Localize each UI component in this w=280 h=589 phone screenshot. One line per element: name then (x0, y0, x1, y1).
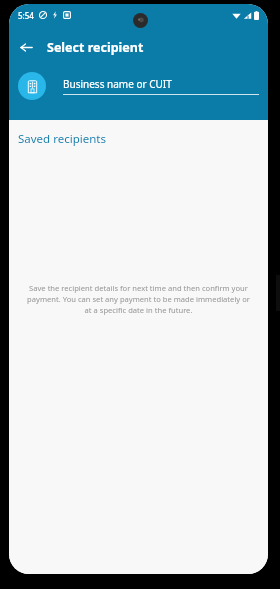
staticText: Save the recipient details for next time… (27, 283, 250, 315)
staticText: Select recipient (47, 39, 144, 56)
button[interactable]: Business name or CUIT (63, 77, 259, 95)
staticText: Saved recipients (18, 131, 106, 147)
button[interactable]: Back (15, 36, 37, 58)
staticText: Business name or CUIT (63, 77, 172, 91)
button[interactable]: Business (18, 72, 46, 100)
staticText: 5:54 (18, 10, 34, 21)
